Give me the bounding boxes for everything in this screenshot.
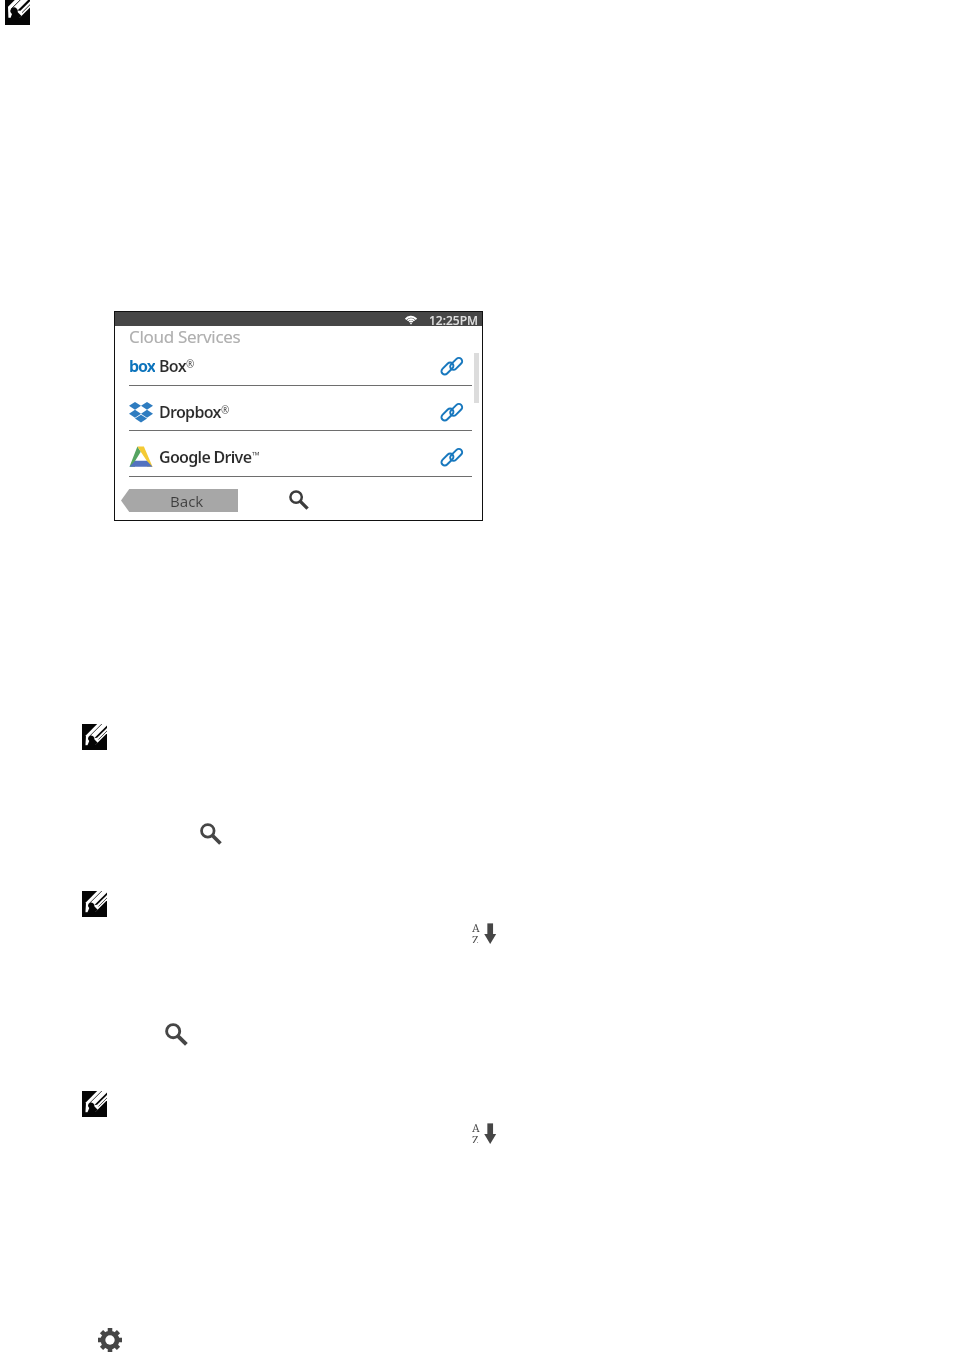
staticText: Back bbox=[170, 491, 204, 511]
button[interactable]: Settings bbox=[98, 1328, 122, 1352]
button[interactable]: Note bbox=[82, 724, 107, 750]
staticText: Box bbox=[159, 355, 186, 377]
button[interactable]: Sort A to Z bbox=[472, 920, 498, 946]
staticText: Dropbox bbox=[159, 401, 221, 423]
staticText: Cloud Services bbox=[129, 325, 241, 348]
button[interactable]: Search bbox=[200, 823, 222, 846]
button[interactable]: Note bbox=[82, 1091, 107, 1117]
button[interactable]: Sort A to Z bbox=[472, 1120, 498, 1146]
staticText: A bbox=[472, 920, 480, 935]
button[interactable]: Note bbox=[82, 891, 107, 917]
staticText: Z bbox=[472, 932, 479, 943]
staticText: 12:25PM bbox=[429, 312, 479, 326]
button[interactable]: Search bbox=[289, 490, 309, 510]
button[interactable]: Back bbox=[121, 489, 238, 512]
button[interactable]: Search bbox=[165, 1023, 188, 1046]
staticText: A bbox=[472, 1120, 480, 1135]
button[interactable]: box bbox=[115, 353, 482, 378]
staticText: box bbox=[129, 355, 155, 377]
staticText: Google Drive bbox=[159, 446, 252, 468]
button[interactable]: Note bbox=[5, 0, 30, 25]
staticText: Z bbox=[472, 1132, 479, 1143]
staticText: ® bbox=[221, 403, 230, 417]
staticText: ® bbox=[186, 357, 195, 371]
staticText: ™ bbox=[252, 448, 260, 462]
button[interactable]: Dropbox bbox=[115, 396, 482, 428]
button[interactable]: Google Drive bbox=[115, 440, 482, 473]
